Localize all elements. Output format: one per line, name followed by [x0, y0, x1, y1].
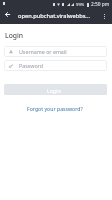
button[interactable]: Password — [4, 60, 107, 71]
button[interactable]: Login — [4, 84, 107, 95]
button[interactable]: Forgot your password? — [25, 104, 85, 113]
staticText: 99% — [76, 2, 85, 8]
staticText: Password — [19, 62, 43, 69]
button[interactable]: More options — [98, 10, 111, 23]
staticText: Username or email — [19, 48, 67, 55]
button[interactable]: Username or email — [4, 46, 107, 57]
staticText: Login — [47, 87, 61, 94]
staticText: Login — [5, 31, 24, 40]
staticText: 2:50 pm — [91, 1, 110, 8]
staticText: open.pubchat.viralwebbs... — [18, 12, 93, 20]
button[interactable]: Back — [1, 8, 14, 21]
